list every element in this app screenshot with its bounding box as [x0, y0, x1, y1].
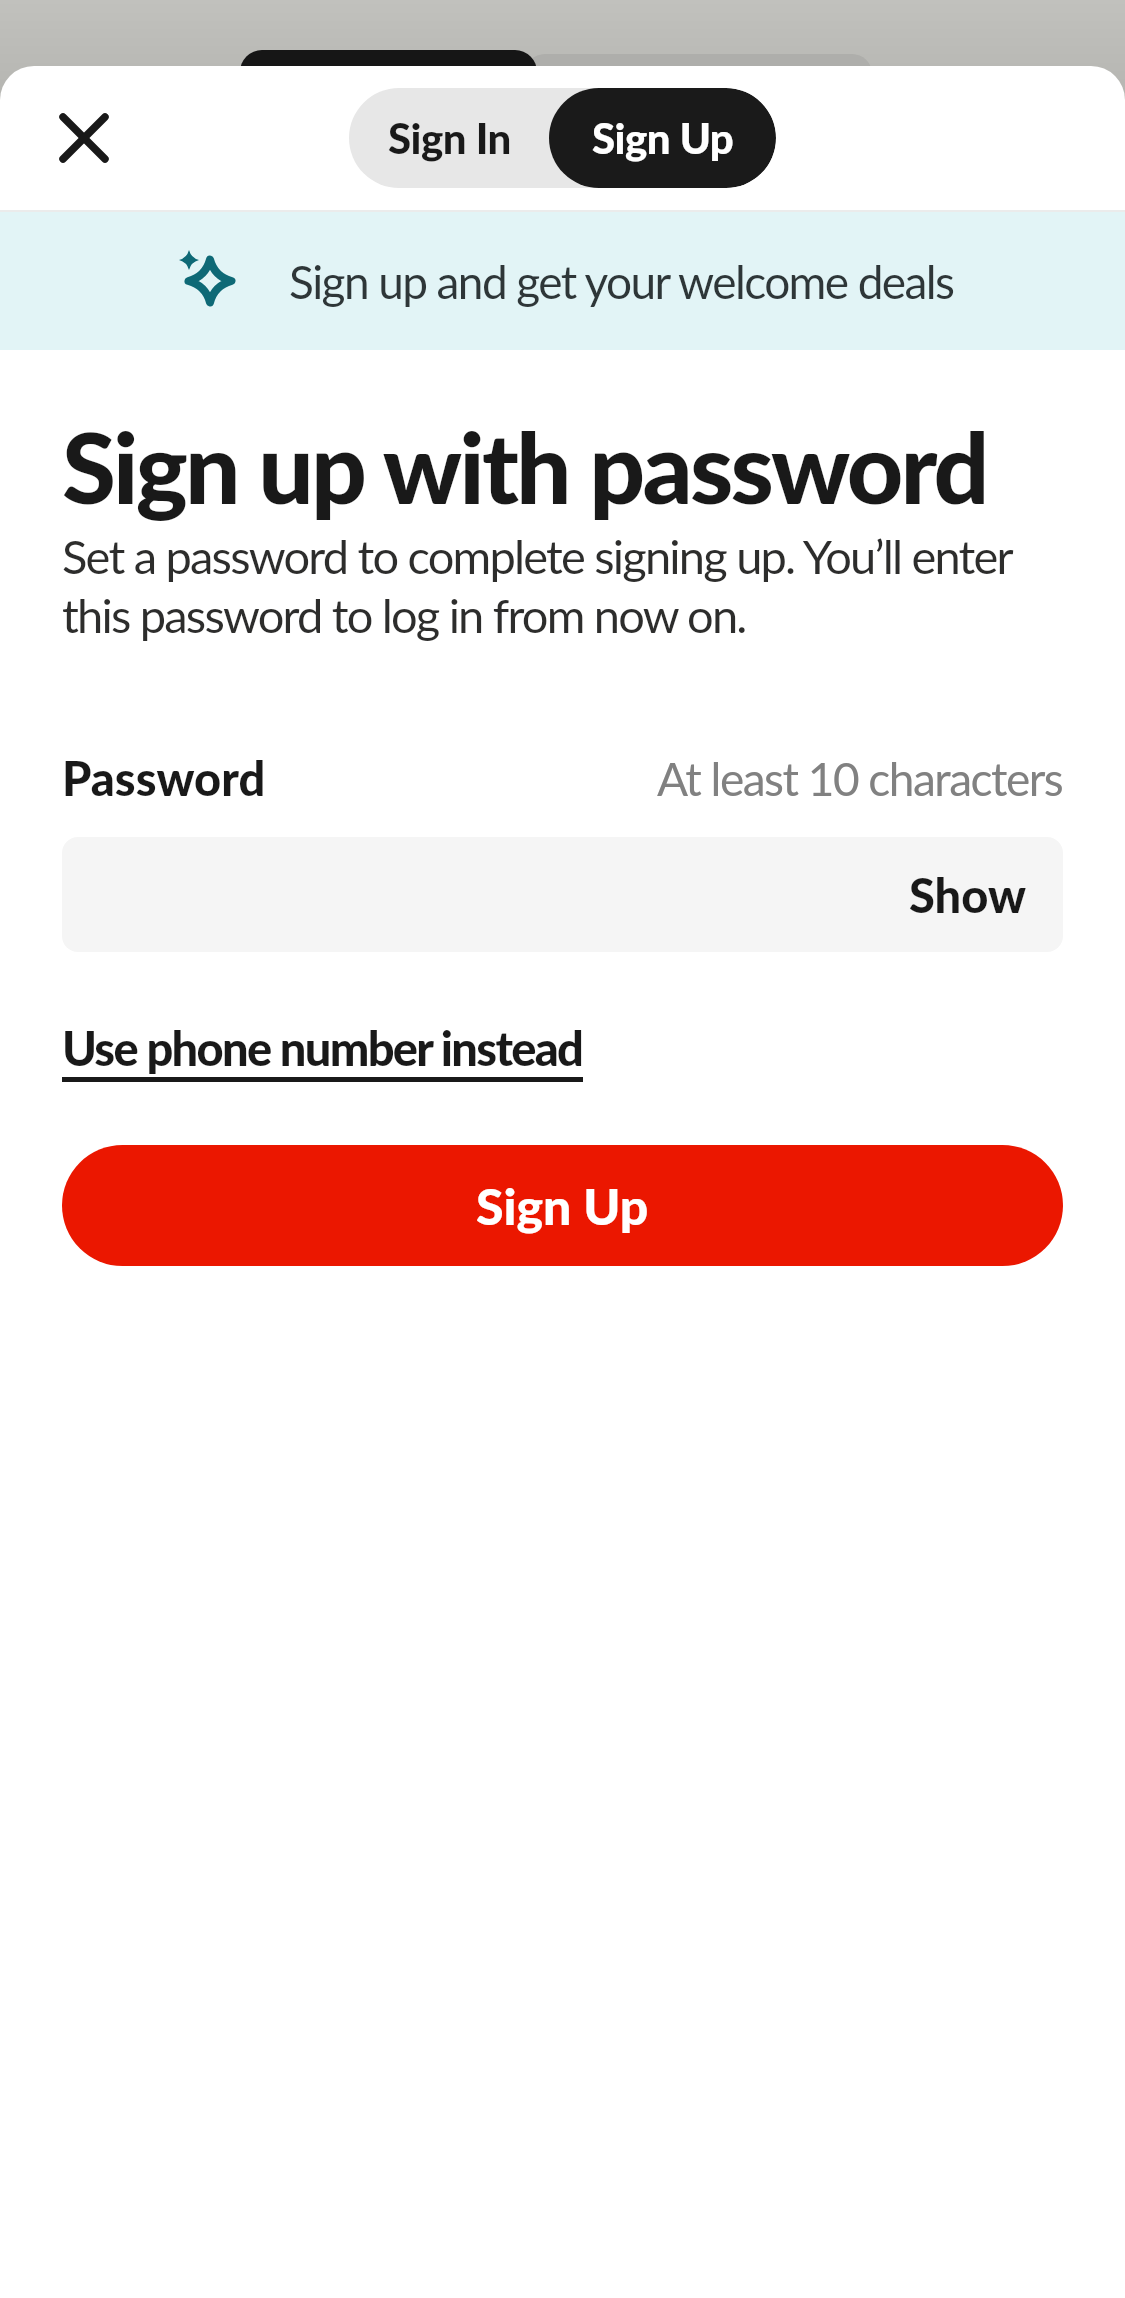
staticText: Sign up with password: [62, 407, 987, 525]
button[interactable]: [48, 102, 120, 174]
staticText: Sign In: [388, 113, 511, 163]
button[interactable]: Sign Up: [549, 88, 776, 188]
button[interactable]: Show: [62, 837, 1063, 952]
staticText: Sign Up: [592, 113, 734, 163]
staticText: Use phone number instead: [62, 1020, 583, 1076]
staticText: Password: [62, 750, 266, 806]
staticText: Sign Up: [476, 1176, 649, 1236]
button[interactable]: Use phone number instead: [62, 1020, 583, 1082]
button[interactable]: Sign In: [349, 88, 549, 188]
staticText: Show: [909, 867, 1027, 923]
staticText: Sign up and get your welcome deals: [289, 254, 954, 309]
staticText: Set a password to complete signing up. Y…: [62, 528, 1012, 643]
button[interactable]: Sign Up: [62, 1145, 1063, 1266]
button[interactable]: Show: [909, 867, 1027, 923]
staticText: At least 10 characters: [657, 751, 1063, 806]
